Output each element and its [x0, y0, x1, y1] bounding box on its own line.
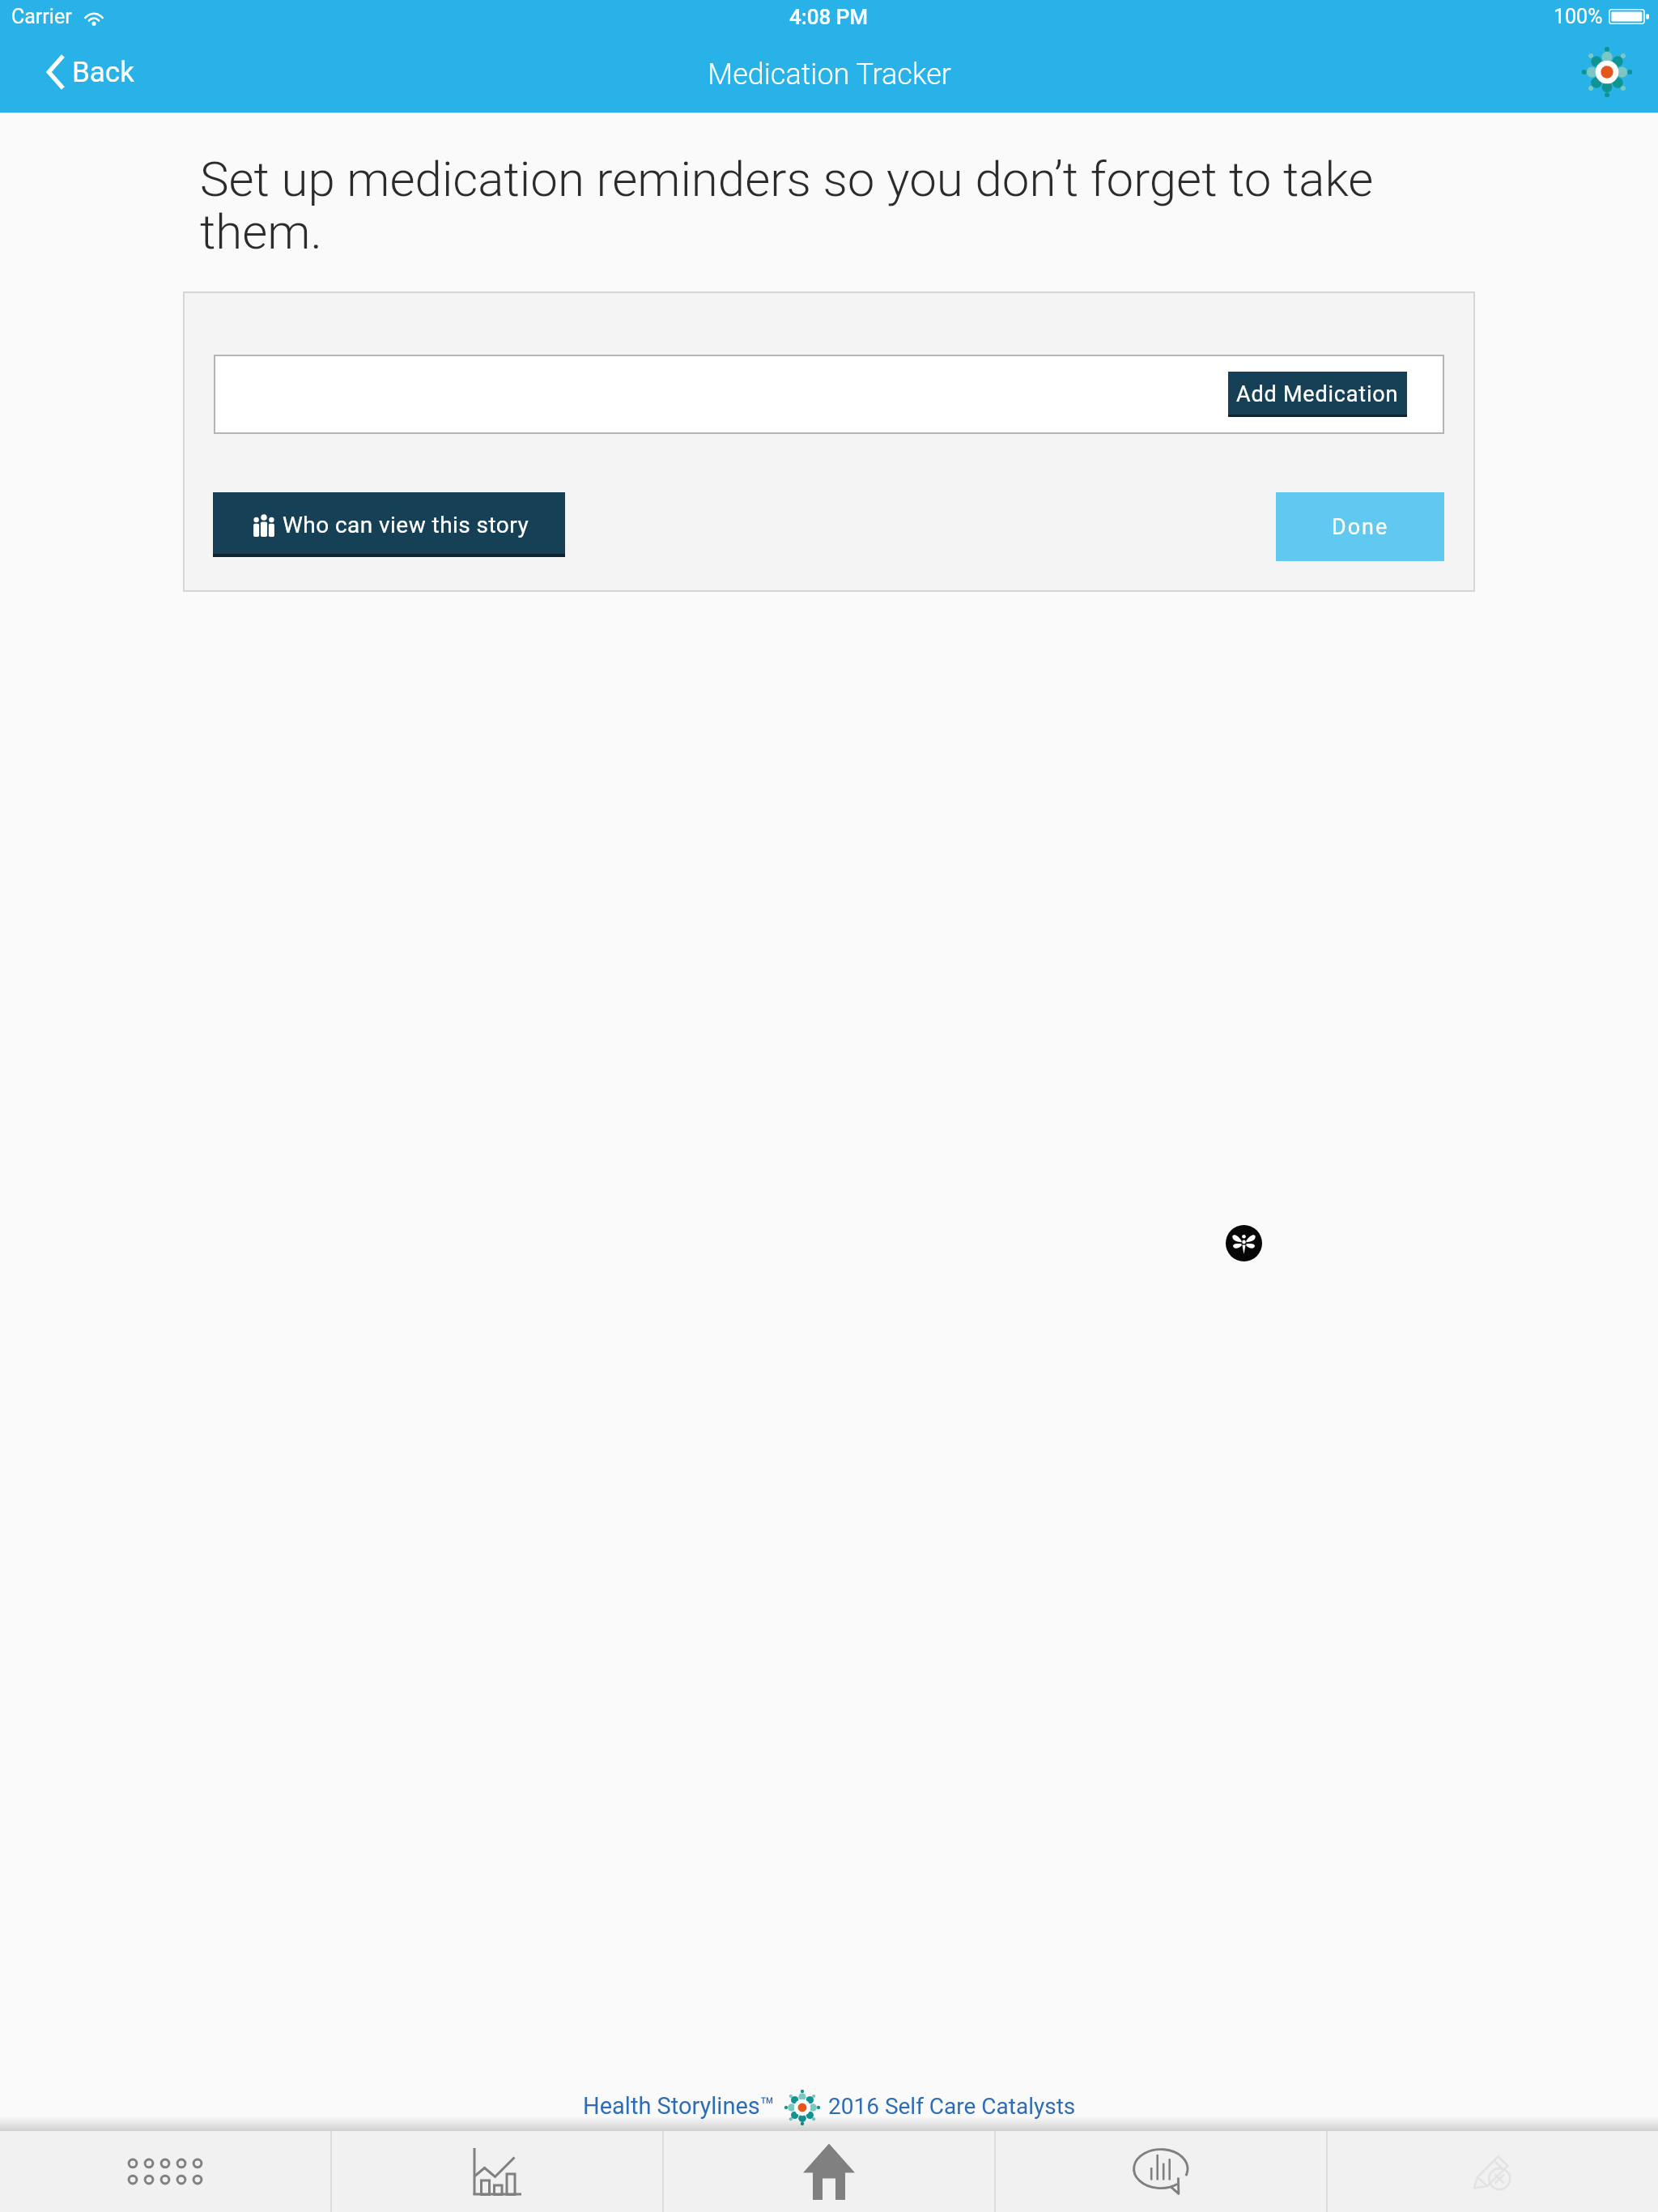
button[interactable]: Add Medication [214, 355, 1444, 434]
button[interactable]: Notes [1328, 2131, 1658, 2212]
staticText: Medication Tracker [708, 57, 951, 91]
staticText: Back [72, 56, 134, 89]
staticText: 2016 Self Care Catalysts [828, 2093, 1076, 2120]
button[interactable]: Add Medication [1228, 372, 1407, 417]
button[interactable]: Butterfly badge [1226, 1225, 1262, 1261]
button[interactable]: Who can view this story [213, 492, 565, 557]
button[interactable]: Trackers [0, 2131, 330, 2212]
staticText: Carrier [11, 5, 72, 28]
staticText: 100% [1554, 5, 1603, 28]
staticText: 4:08 PM [789, 5, 869, 29]
button[interactable]: Insights [996, 2131, 1326, 2212]
button[interactable]: Back [45, 49, 146, 96]
button[interactable]: Health Storylines home [1580, 45, 1634, 99]
staticText: Done [1332, 514, 1389, 540]
button[interactable]: Charts [332, 2131, 662, 2212]
button[interactable]: Done [1276, 492, 1444, 561]
staticText: Who can view this story [283, 512, 529, 538]
button[interactable]: Home [664, 2131, 994, 2212]
staticText: Set up medication reminders so you don’t… [200, 151, 1390, 261]
staticText: Health Storylines™ [583, 2092, 775, 2120]
staticText: Add Medication [1236, 381, 1399, 407]
